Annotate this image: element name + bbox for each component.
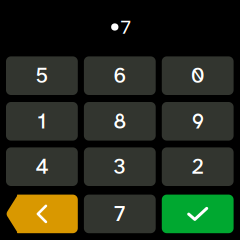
button[interactable]: Delete xyxy=(6,195,78,233)
staticText: 7 xyxy=(114,200,125,228)
staticText: 7 xyxy=(121,14,131,40)
button[interactable]: 5 xyxy=(6,56,78,95)
button[interactable]: 4 xyxy=(6,147,78,186)
button[interactable]: 1 xyxy=(6,102,78,141)
button[interactable]: Confirm xyxy=(162,195,234,233)
button[interactable]: 6 xyxy=(84,56,156,95)
button[interactable]: 8 xyxy=(84,102,156,141)
staticText: 4 xyxy=(35,153,48,180)
button[interactable]: 0 xyxy=(162,56,234,95)
staticText: 1 xyxy=(37,107,46,135)
staticText: 3 xyxy=(113,153,126,180)
button[interactable]: 9 xyxy=(162,102,234,141)
staticText: 8 xyxy=(113,107,126,135)
staticText: 9 xyxy=(192,107,204,135)
button[interactable]: 7 xyxy=(84,195,156,233)
staticText: 2 xyxy=(192,153,204,180)
staticText: 6 xyxy=(113,62,126,89)
button[interactable]: 3 xyxy=(84,147,156,186)
button[interactable]: 2 xyxy=(162,147,234,186)
staticText: 5 xyxy=(35,62,48,89)
staticText: 0 xyxy=(191,62,205,89)
